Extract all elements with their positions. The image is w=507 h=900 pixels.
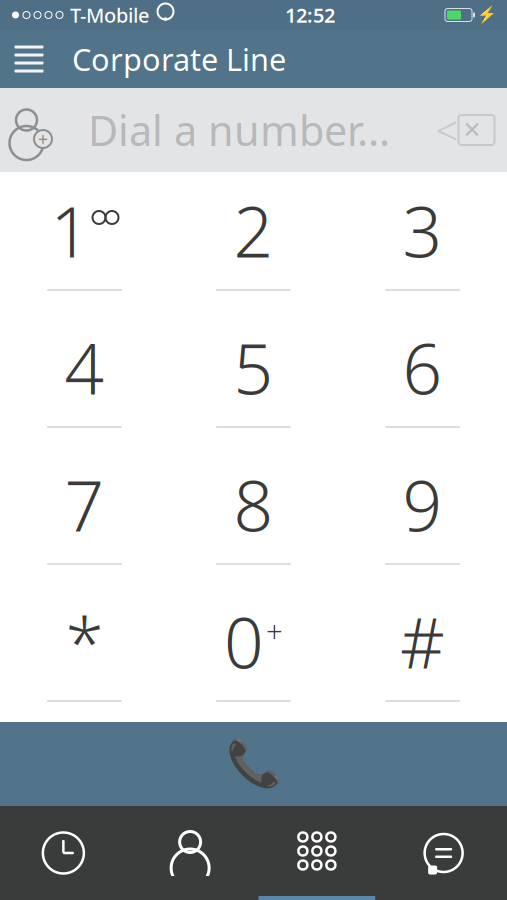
button[interactable]: Menu xyxy=(0,30,58,88)
button[interactable]: * xyxy=(0,583,169,720)
button[interactable]: Recents xyxy=(0,806,127,900)
staticText: # xyxy=(400,595,445,688)
staticText: 5 xyxy=(233,321,273,414)
button[interactable]: Delete xyxy=(423,88,507,172)
staticText: 3 xyxy=(402,184,442,277)
staticText: 9 xyxy=(402,458,442,551)
staticText: 📞 xyxy=(225,738,281,790)
button[interactable]: 2 xyxy=(169,172,338,309)
staticText: Corporate Line xyxy=(72,39,286,79)
button[interactable]: Add contact xyxy=(0,88,62,172)
button[interactable]: Contacts xyxy=(127,806,254,900)
button[interactable]: # xyxy=(338,583,507,720)
button[interactable]: 3 xyxy=(338,172,507,309)
staticText: + xyxy=(266,611,283,650)
button[interactable]: Keypad xyxy=(253,806,380,900)
staticText: 6 xyxy=(402,321,442,414)
staticText: Dial a number... xyxy=(88,103,390,157)
staticText: 1 xyxy=(50,184,90,277)
button[interactable]: 5 xyxy=(169,309,338,446)
staticText: 4 xyxy=(64,321,104,414)
button[interactable]: 4 xyxy=(0,309,169,446)
staticText: 2 xyxy=(233,184,273,277)
staticText: 0 xyxy=(224,595,264,688)
staticText: ⚡ xyxy=(477,6,497,24)
button[interactable]: 6 xyxy=(338,309,507,446)
staticText: 7 xyxy=(64,458,104,551)
staticText: T-Mobile xyxy=(70,2,149,28)
button[interactable]: Call xyxy=(0,722,507,806)
button[interactable]: 9 xyxy=(338,446,507,583)
button[interactable]: Messages xyxy=(380,806,507,900)
staticText: ✕ xyxy=(462,117,481,143)
button[interactable]: 1 xyxy=(0,172,169,309)
staticText: < xyxy=(435,103,458,156)
staticText: 12:52 xyxy=(285,2,335,28)
button[interactable]: 8 xyxy=(169,446,338,583)
staticText: 8 xyxy=(233,458,273,551)
staticText: + xyxy=(38,127,48,150)
button[interactable]: 0 xyxy=(169,583,338,720)
button[interactable]: 7 xyxy=(0,446,169,583)
staticText: * xyxy=(65,595,103,688)
